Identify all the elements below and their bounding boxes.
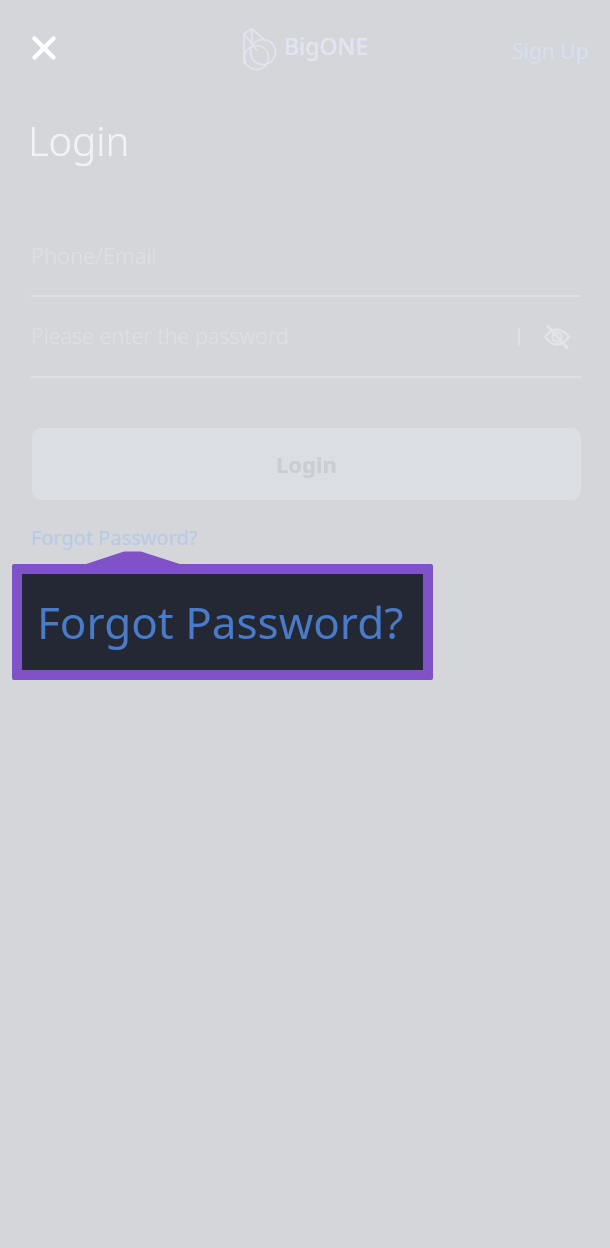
staticText: Forgot Password? (37, 592, 404, 652)
button[interactable] (540, 322, 574, 352)
staticText: Forgot Password? (31, 524, 198, 551)
staticText: Sign Up (512, 37, 589, 66)
staticText: Login (28, 113, 130, 167)
button[interactable]: Sign Up (498, 29, 602, 73)
staticText: Login (276, 449, 337, 479)
button[interactable]: Forgot Password? (31, 524, 198, 551)
staticText: BigONE (284, 30, 369, 61)
button[interactable] (24, 28, 64, 68)
